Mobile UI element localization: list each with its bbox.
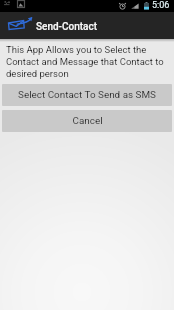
button[interactable]: Cancel xyxy=(2,110,172,132)
button[interactable]: Select Contact To Send as SMS xyxy=(2,84,172,106)
staticText: Send-Contact xyxy=(36,21,98,33)
staticText: 5:06 xyxy=(152,0,170,11)
staticText: Cancel xyxy=(72,115,103,127)
other: Send contact app icon xyxy=(6,15,33,36)
staticText: Select Contact To Send as SMS xyxy=(18,89,156,101)
staticText: This App Allows you to Select the Contac… xyxy=(6,44,168,79)
